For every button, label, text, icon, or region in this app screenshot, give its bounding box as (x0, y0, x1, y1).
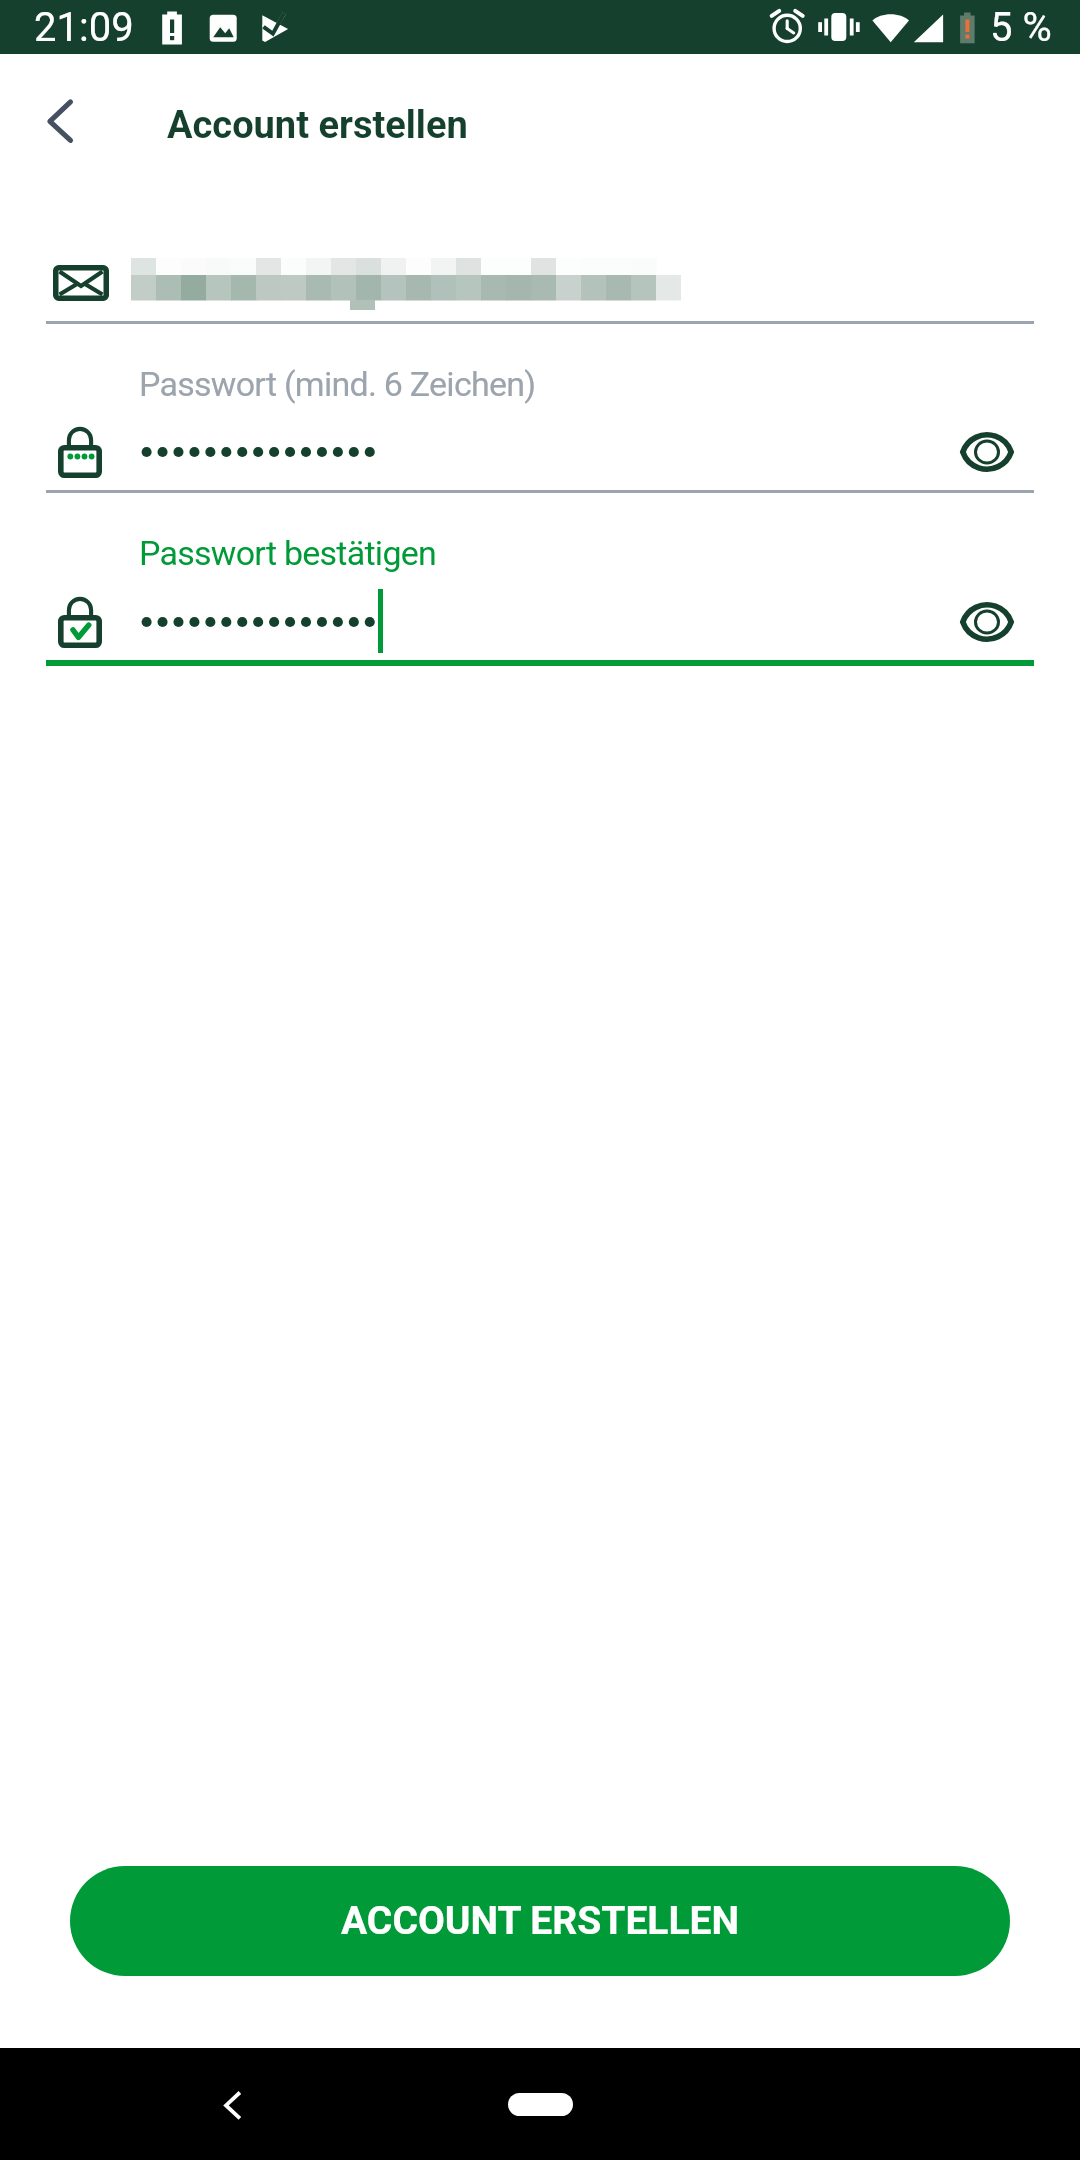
staticText: 21:09 (34, 4, 134, 51)
staticText: 5 % (990, 4, 1052, 51)
button[interactable]: ACCOUNT ERSTELLEN (70, 1866, 1010, 1976)
button[interactable]: Back (192, 2064, 272, 2144)
staticText: ACCOUNT ERSTELLEN (341, 1898, 739, 1944)
button[interactable]: Show password (951, 586, 1023, 658)
staticText: Passwort bestätigen (139, 533, 437, 573)
button[interactable]: Home (508, 2093, 573, 2116)
button[interactable]: Back (22, 81, 94, 153)
staticText: Passwort (mind. 6 Zeichen) (139, 364, 536, 404)
button[interactable]: Show password (951, 416, 1023, 488)
staticText: Account erstellen (167, 103, 468, 148)
